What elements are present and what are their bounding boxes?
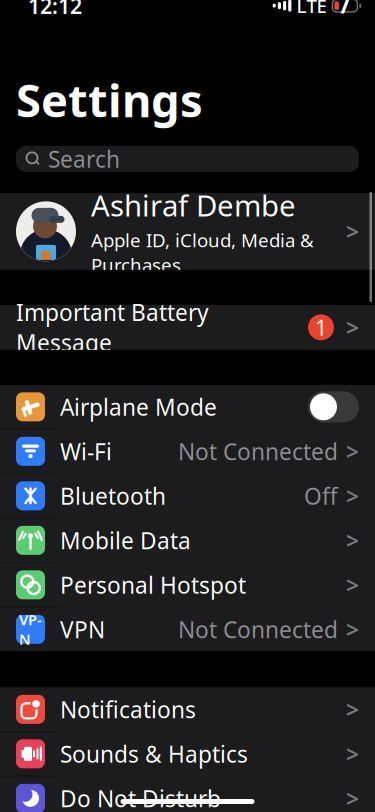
staticText: > xyxy=(346,436,359,466)
button[interactable]: Airplane Mode xyxy=(0,385,375,429)
button[interactable]: Sounds & Haptics xyxy=(0,732,375,776)
staticText: > xyxy=(346,481,359,511)
staticText: Airplane Mode xyxy=(60,392,217,422)
staticText: Settings xyxy=(16,70,203,130)
staticText: > xyxy=(346,216,359,246)
button[interactable]: Bluetooth xyxy=(0,474,375,518)
staticText: Mobile Data xyxy=(60,525,191,555)
staticText: > xyxy=(346,570,359,600)
staticText: VPN xyxy=(19,610,42,649)
staticText: > xyxy=(346,312,359,342)
button[interactable]: Do Not Disturb xyxy=(0,776,375,812)
staticText: Not Connected xyxy=(178,436,338,466)
staticText: Not Connected xyxy=(178,614,338,644)
staticText: 1 xyxy=(315,313,327,341)
staticText: > xyxy=(346,739,359,769)
button[interactable]: Personal Hotspot xyxy=(0,563,375,607)
staticText: LTE xyxy=(296,0,326,18)
staticText: VPN xyxy=(60,614,105,644)
button[interactable]: Mobile Data xyxy=(0,518,375,562)
staticText: Search xyxy=(48,144,120,174)
staticText: Notifications xyxy=(60,694,196,724)
staticText: Wi-Fi xyxy=(60,436,112,466)
staticText: > xyxy=(346,694,359,724)
button[interactable]: Ashiraf Dembe xyxy=(0,193,375,270)
staticText: 12:12 xyxy=(28,0,82,20)
staticText: Ashiraf Dembe xyxy=(91,186,296,225)
staticText: Important Battery Message xyxy=(16,297,209,357)
staticText: > xyxy=(346,525,359,555)
button[interactable]: Notifications xyxy=(0,687,375,731)
staticText: Off xyxy=(304,481,338,511)
staticText: Personal Hotspot xyxy=(60,570,246,600)
staticText: / xyxy=(340,0,349,19)
staticText: > xyxy=(346,614,359,644)
button[interactable]: VPN xyxy=(0,607,375,651)
staticText: Do Not Disturb xyxy=(60,783,221,812)
staticText: Apple ID, iCloud, Media & Purchases xyxy=(91,227,314,277)
button[interactable]: Important Battery Message xyxy=(0,305,375,350)
staticText: Bluetooth xyxy=(60,481,166,511)
button[interactable]: Wi-Fi xyxy=(0,429,375,473)
button[interactable]: Search xyxy=(16,146,359,172)
staticText: > xyxy=(346,783,359,812)
staticText: Sounds & Haptics xyxy=(60,739,248,769)
